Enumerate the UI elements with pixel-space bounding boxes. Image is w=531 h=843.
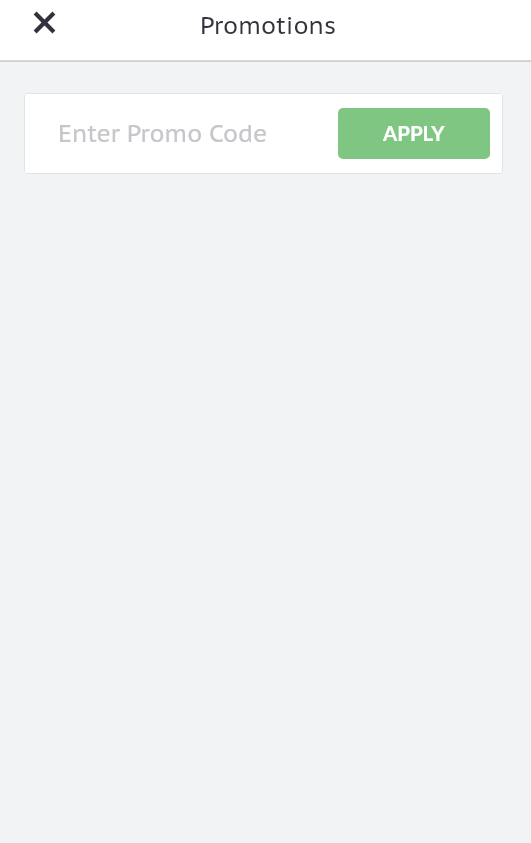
button[interactable]: APPLY	[338, 108, 490, 159]
button[interactable]: Enter Promo Code	[24, 93, 338, 174]
staticText: Promotions	[200, 10, 336, 41]
staticText: Enter Promo Code	[58, 118, 268, 149]
button[interactable]: Close	[22, 0, 66, 44]
staticText: APPLY	[383, 121, 445, 146]
